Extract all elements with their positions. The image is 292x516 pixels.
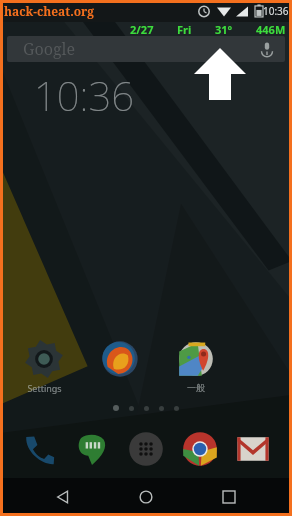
button[interactable]: Chrome — [179, 428, 221, 470]
staticText: 446M — [256, 22, 286, 36]
button[interactable]: Google — [7, 36, 285, 62]
button[interactable]: Voice search — [257, 39, 277, 59]
button[interactable]: Firefox — [82, 338, 158, 394]
button[interactable]: 10:36 — [0, 62, 292, 124]
button[interactable]: Back — [43, 478, 83, 516]
button[interactable]: 一般 — [158, 338, 234, 393]
staticText: 31° — [215, 22, 233, 36]
button[interactable]: Settings — [6, 338, 82, 394]
button[interactable]: Gmail — [232, 428, 274, 470]
staticText: 一般 — [187, 382, 205, 393]
staticText: Settings — [27, 382, 62, 394]
staticText: hack-cheat.org — [4, 3, 95, 19]
button[interactable]: Home — [126, 478, 166, 516]
staticText: Fri — [177, 22, 192, 36]
staticText: 10:36 — [263, 4, 289, 18]
staticText: Google — [23, 38, 76, 60]
button[interactable]: Recents — [209, 478, 249, 516]
staticText: 10:36 — [34, 68, 134, 122]
button[interactable]: Phone — [18, 428, 60, 470]
button[interactable]: Apps — [125, 428, 167, 470]
staticText: 2/27 — [130, 22, 154, 36]
button[interactable]: Hangouts — [71, 428, 113, 470]
